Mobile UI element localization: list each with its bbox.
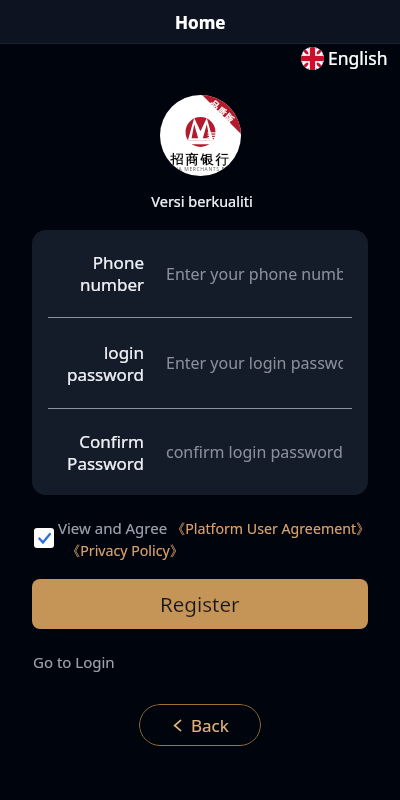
button[interactable]: Register (32, 579, 368, 629)
staticText: 招商银行 (160, 151, 241, 167)
staticText: confirm login password (166, 441, 343, 463)
button[interactable]: Back (139, 704, 261, 746)
staticText: View and Agree (58, 518, 168, 538)
staticText: Enter your login password (166, 352, 343, 374)
staticText: Phone number (48, 251, 144, 296)
button[interactable]: 《Platform User Agreement》 (171, 519, 371, 538)
staticText: CHINA MERCHANTS BANK (160, 166, 241, 173)
staticText: login password (48, 341, 144, 386)
button[interactable]: Go to Login (33, 652, 115, 672)
button[interactable]: 《Privacy Policy》 (66, 541, 184, 560)
button[interactable]: English (297, 44, 388, 72)
staticText: Back (191, 714, 229, 737)
staticText: English (328, 46, 388, 70)
button[interactable]: Agree to terms checkbox (34, 528, 54, 548)
staticText: 品质版 (207, 97, 237, 126)
staticText: Versi berkualiti (2, 191, 400, 211)
staticText: Home (175, 11, 226, 34)
staticText: Enter your phone number (166, 263, 343, 285)
staticText: Register (160, 590, 240, 618)
staticText: Confirm Password (48, 430, 144, 475)
